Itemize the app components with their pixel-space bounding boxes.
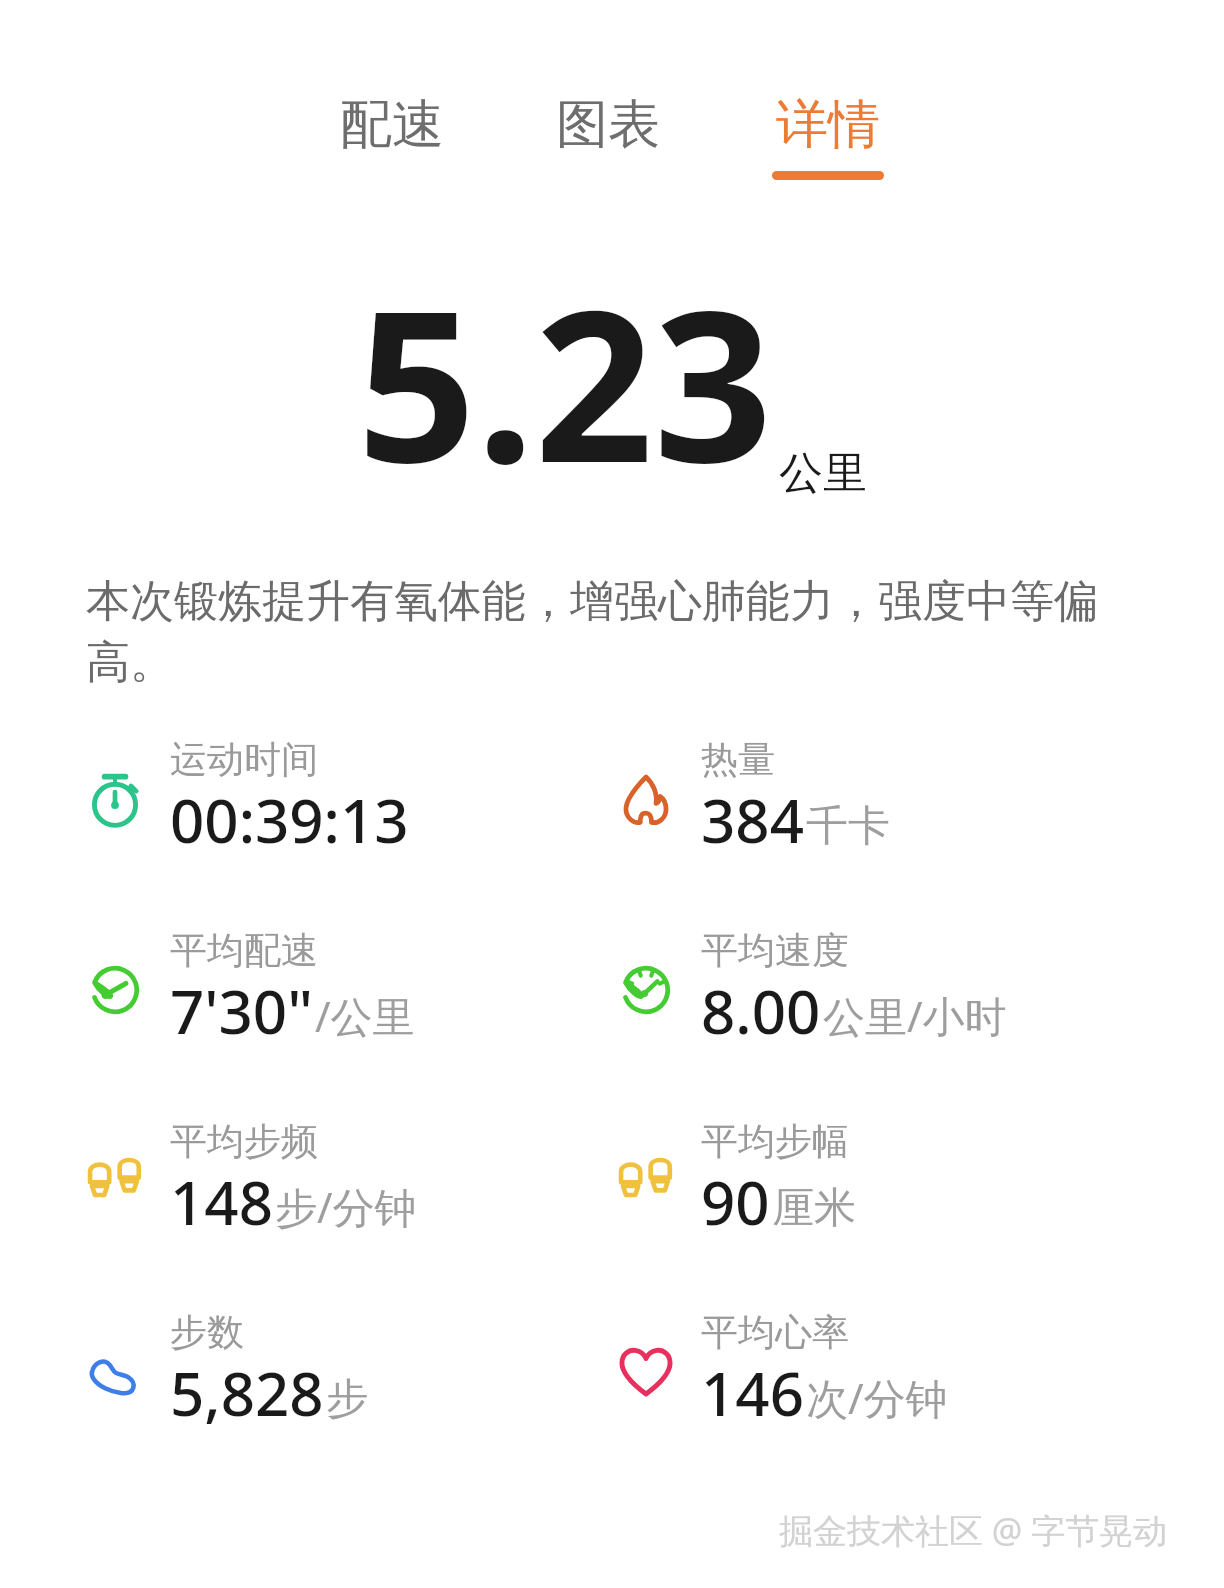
other: Average stride [615,1150,677,1212]
staticText: /公里 [315,993,415,1044]
button[interactable]: Calories [615,739,890,858]
other: Average cadence [84,1150,146,1212]
staticText: 平均配速 [170,930,318,974]
staticText: 384 [701,787,804,858]
other: Duration [84,768,146,830]
staticText: 7'30" [170,978,313,1049]
staticText: 5,828 [170,1360,324,1431]
staticText: 公里/小时 [823,993,1007,1044]
staticText: 平均心率 [701,1312,849,1356]
button[interactable]: 图表 [550,96,666,180]
button[interactable]: Average cadence [84,1121,417,1240]
button[interactable]: Average speed [615,930,1007,1049]
staticText: 00:39:13 [170,787,409,858]
button[interactable]: Steps [84,1312,368,1431]
other: Average pace [84,959,146,1021]
button[interactable]: 配速 [334,96,450,180]
staticText: 步/分钟 [275,1184,417,1235]
staticText: 千卡 [806,803,890,853]
staticText: 次/分钟 [806,1375,948,1426]
staticText: 8.00 [701,978,821,1049]
staticText: 平均步幅 [701,1121,849,1165]
staticText: 90 [701,1169,770,1240]
staticText: 平均步频 [170,1121,318,1165]
other: Calories [615,768,677,830]
button[interactable]: Average heart rate [615,1312,948,1431]
other: Average heart rate [615,1341,677,1403]
staticText: 本次锻炼提升有氧体能，增强心肺能力，强度中等偏高。 [86,571,1148,693]
staticText: 步数 [170,1312,244,1356]
button[interactable]: Average stride [615,1121,856,1240]
staticText: 公里 [779,449,867,501]
staticText: 配速 [340,96,444,157]
staticText: 148 [170,1169,273,1240]
button[interactable]: Average pace [84,930,415,1049]
staticText: 图表 [556,96,660,157]
staticText: 平均速度 [701,930,849,974]
other: Steps [84,1341,146,1403]
button[interactable]: 详情 [766,96,890,180]
button[interactable]: Duration [84,739,409,858]
staticText: 5.23 [357,240,773,523]
staticText: 厘米 [772,1185,856,1235]
staticText: 掘金技术社区 @ 字节晃动 [779,1512,1168,1554]
staticText: 详情 [776,96,880,157]
staticText: 热量 [701,739,775,783]
staticText: 146 [701,1360,804,1431]
staticText: 运动时间 [170,739,318,783]
other: Average speed [615,959,677,1021]
staticText: 步 [326,1376,368,1426]
